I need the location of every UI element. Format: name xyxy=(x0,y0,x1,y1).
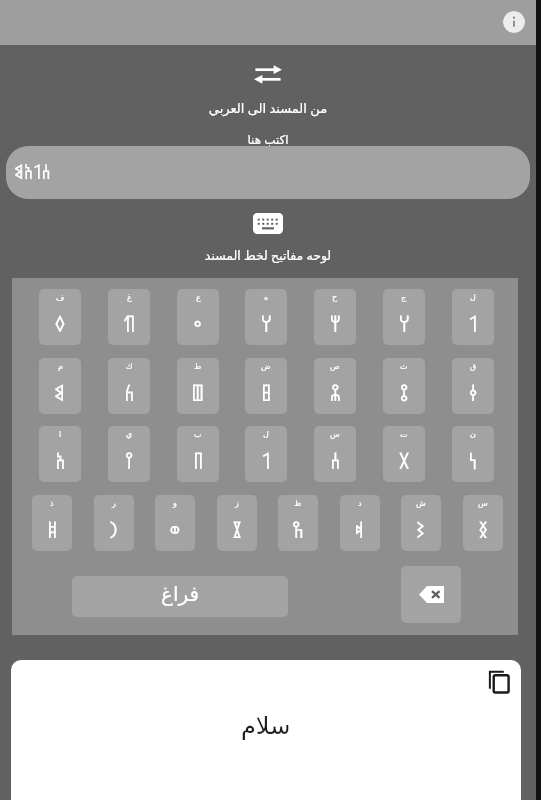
staticText: ح xyxy=(332,293,338,302)
staticText: 𐩱 xyxy=(55,449,66,475)
button[interactable]: ه xyxy=(245,289,287,345)
button[interactable]: م xyxy=(39,358,81,414)
staticText: 𐩥 xyxy=(169,518,181,544)
button[interactable]: ن xyxy=(452,426,494,482)
staticText: ه xyxy=(264,293,269,302)
staticText: 𐩻 xyxy=(399,381,410,407)
button[interactable]: ث xyxy=(383,358,425,414)
staticText: سلام xyxy=(241,712,291,740)
button[interactable]: ح xyxy=(314,289,356,345)
staticText: و xyxy=(173,499,177,508)
staticText: ل xyxy=(470,293,476,302)
staticText: 𐩩 xyxy=(398,449,411,475)
staticText: ن xyxy=(470,430,476,439)
staticText: 𐩬 xyxy=(468,449,478,475)
staticText: ب xyxy=(194,430,202,439)
staticText: 𐩣 xyxy=(54,381,66,407)
staticText: ت xyxy=(400,430,408,439)
button[interactable]: ز xyxy=(217,495,257,551)
staticText: 𐩳 xyxy=(261,381,272,407)
button[interactable]: ظ xyxy=(278,495,318,551)
staticText: 𐩹 xyxy=(47,518,58,544)
staticText: 𐩢 xyxy=(329,312,342,338)
button[interactable]: ي xyxy=(108,426,150,482)
button[interactable]: Show keyboard xyxy=(253,213,283,234)
staticText: 𐩼 xyxy=(292,518,305,544)
staticText: ق xyxy=(470,362,477,371)
button[interactable]: Backspace xyxy=(401,566,461,623)
staticText: ر xyxy=(112,499,116,508)
button[interactable]: ف xyxy=(39,289,81,345)
staticText: فراغ xyxy=(161,582,200,605)
staticText: ي xyxy=(126,430,133,439)
staticText: 𐩧 xyxy=(109,518,119,544)
button[interactable]: ب xyxy=(177,426,219,482)
staticText: 𐩪𐩡𐩱𐩣 xyxy=(14,161,51,184)
staticText: 𐩡 xyxy=(469,312,478,338)
staticText: من المسند الى العربي xyxy=(0,99,536,117)
staticText: ش xyxy=(416,499,426,508)
staticText: ص xyxy=(330,362,340,371)
staticText: ث xyxy=(400,362,408,371)
staticText: 𐩮 xyxy=(329,381,342,407)
button[interactable]: ض xyxy=(245,358,287,414)
staticText: 𐩸 xyxy=(232,518,243,544)
staticText: ج xyxy=(401,293,407,302)
button[interactable]: ص xyxy=(314,358,356,414)
button[interactable]: ل xyxy=(245,426,287,482)
staticText: د xyxy=(358,499,362,508)
staticText: 𐩤 xyxy=(468,381,479,407)
staticText: 𐩲 xyxy=(193,312,203,338)
staticText: 𐩷 xyxy=(191,381,205,407)
staticText: 𐩰 xyxy=(54,312,66,338)
staticText: 𐩯 xyxy=(478,518,489,544)
staticText: س xyxy=(330,430,340,439)
staticText: 𐩶 xyxy=(123,312,136,338)
staticText: اكتب هنا xyxy=(0,131,536,147)
staticText: ك xyxy=(126,362,133,371)
button[interactable]: ش xyxy=(401,495,441,551)
button[interactable]: ع xyxy=(177,289,219,345)
staticText: ظ xyxy=(294,499,302,508)
button[interactable]: 𐩪𐩡𐩱𐩣 xyxy=(6,146,530,199)
button[interactable]: فراغ xyxy=(72,576,288,617)
staticText: 𐩪 xyxy=(330,449,341,475)
button[interactable]: ذ xyxy=(32,495,72,551)
staticText: 𐩺 xyxy=(124,449,135,475)
staticText: ز xyxy=(235,499,239,508)
staticText: ع xyxy=(196,293,201,302)
staticText: س xyxy=(478,499,488,508)
button[interactable]: ر xyxy=(94,495,134,551)
staticText: ذ xyxy=(50,499,54,508)
button[interactable]: س xyxy=(314,426,356,482)
staticText: لوحه مفاتيح لخط المسند xyxy=(0,247,536,264)
staticText: 𐩵 xyxy=(355,518,365,544)
staticText: 𐩦 xyxy=(416,518,426,544)
button[interactable]: ت xyxy=(383,426,425,482)
staticText: ف xyxy=(56,293,65,302)
button[interactable]: غ xyxy=(108,289,150,345)
staticText: ا xyxy=(59,430,62,439)
staticText: 𐩫 xyxy=(124,381,135,407)
button[interactable]: ط xyxy=(177,358,219,414)
staticText: ل xyxy=(263,430,269,439)
button[interactable]: و xyxy=(155,495,195,551)
staticText: م xyxy=(58,362,63,371)
button[interactable]: س xyxy=(463,495,503,551)
staticText: 𐩨 xyxy=(193,449,204,475)
button[interactable]: Info xyxy=(503,11,525,33)
button[interactable]: Swap translation direction xyxy=(254,64,282,85)
button[interactable]: ا xyxy=(39,426,81,482)
button[interactable]: ل xyxy=(452,289,494,345)
staticText: ط xyxy=(194,362,202,371)
staticText: 𐩠 xyxy=(398,312,411,338)
button[interactable]: د xyxy=(340,495,380,551)
button[interactable]: ج xyxy=(383,289,425,345)
button[interactable]: Copy result xyxy=(487,670,511,694)
staticText: 𐩠 xyxy=(260,312,273,338)
staticText: غ xyxy=(127,293,132,302)
staticText: 𐩡 xyxy=(262,449,271,475)
staticText: ض xyxy=(261,362,271,371)
button[interactable]: ك xyxy=(108,358,150,414)
button[interactable]: ق xyxy=(452,358,494,414)
